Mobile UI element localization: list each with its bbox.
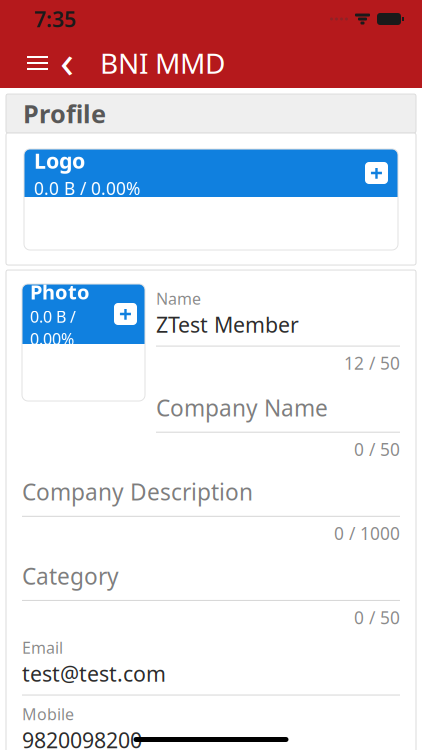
button[interactable]: Email: [22, 637, 400, 696]
staticText: Photo: [30, 278, 90, 305]
staticText: BNI MMD: [100, 44, 225, 82]
staticText: 12 / 50: [344, 352, 400, 375]
staticText: test@test.com: [22, 659, 166, 687]
button[interactable]: Logo: [24, 149, 398, 250]
button[interactable]: Company Description: [22, 467, 400, 517]
staticText: 9820098200: [22, 726, 142, 750]
staticText: Mobile: [22, 703, 74, 725]
staticText: Profile: [23, 97, 106, 130]
button[interactable]: Photo: [22, 284, 145, 401]
button[interactable]: Back: [54, 30, 80, 96]
staticText: +: [370, 158, 383, 188]
staticText: Email: [22, 637, 63, 658]
button[interactable]: Company Name: [156, 383, 400, 433]
button[interactable]: Add: [365, 162, 388, 184]
staticText: Company Name: [156, 393, 328, 423]
staticText: +: [119, 299, 132, 329]
staticText: 0 / 50: [354, 606, 400, 629]
staticText: 0.0 B /: [30, 306, 76, 327]
staticText: Name: [156, 288, 201, 309]
button[interactable]: Menu: [21, 46, 54, 80]
button[interactable]: Name: [156, 288, 400, 347]
staticText: Category: [22, 561, 119, 591]
staticText: Company Description: [22, 477, 253, 507]
button[interactable]: Mobile: [22, 703, 400, 750]
staticText: 7:35: [34, 5, 76, 33]
staticText: 0.0 B / 0.00%: [34, 177, 140, 200]
staticText: 0 / 50: [354, 438, 400, 461]
staticText: 0.00%: [30, 328, 74, 349]
staticText: ZTest Member: [156, 310, 299, 338]
staticText: Logo: [34, 146, 85, 175]
button[interactable]: Category: [22, 551, 400, 601]
staticText: 0 / 1000: [334, 522, 400, 545]
staticText: ‹: [60, 30, 74, 91]
button[interactable]: Add: [114, 303, 137, 325]
